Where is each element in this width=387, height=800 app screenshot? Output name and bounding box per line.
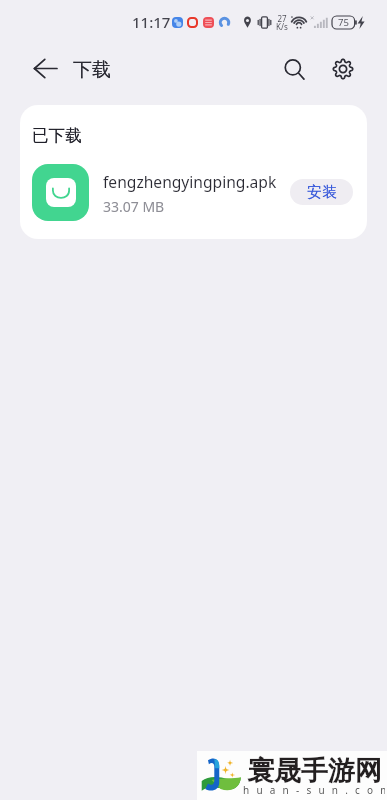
staticText: 已下载: [32, 125, 82, 146]
button[interactable]: Back: [25, 49, 65, 89]
button[interactable]: fengzhengyingping.apk: [20, 161, 367, 223]
staticText: 已下载: [32, 125, 82, 146]
staticText: 安装: [307, 183, 337, 202]
button[interactable]: Search: [274, 49, 314, 89]
staticText: 安装: [307, 183, 337, 202]
staticText: 下载: [73, 58, 111, 82]
staticText: 27: [275, 13, 289, 24]
staticText: 75: [338, 16, 349, 29]
staticText: fengzhengyingping.apk: [103, 171, 277, 192]
staticText: 11:17: [132, 12, 171, 32]
staticText: 寰晟手游网: [247, 754, 382, 788]
staticText: 33.07 MB: [103, 197, 165, 216]
staticText: K/s: [275, 21, 289, 32]
button[interactable]: Settings: [323, 49, 363, 89]
staticText: 下载: [73, 58, 111, 82]
staticText: h u a n - s u n . c o m: [243, 783, 385, 797]
button[interactable]: 安装: [290, 179, 353, 205]
